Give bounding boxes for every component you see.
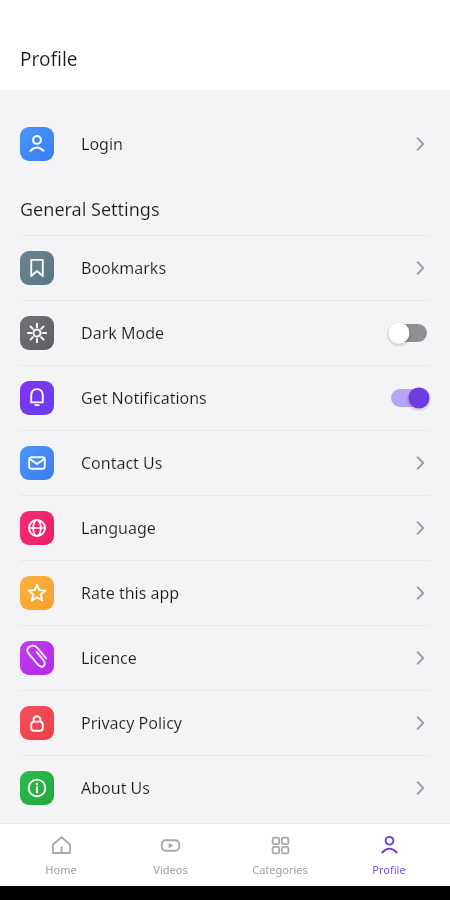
button[interactable]: Contact Us: [0, 431, 450, 495]
staticText: Get Notifications: [81, 387, 386, 409]
button[interactable]: Licence: [0, 626, 450, 690]
staticText: Language: [81, 517, 410, 539]
staticText: About Us: [81, 777, 410, 799]
button[interactable]: Privacy Policy: [0, 691, 450, 755]
button[interactable]: Get Notifications: [0, 366, 450, 430]
staticText: Privacy Policy: [81, 712, 410, 734]
staticText: Bookmarks: [81, 257, 410, 279]
staticText: Licence: [81, 647, 410, 669]
staticText: Categories: [252, 862, 308, 877]
button[interactable]: Rate this app: [0, 561, 450, 625]
button[interactable]: Switch on: [386, 385, 430, 411]
staticText: Profile: [372, 862, 406, 877]
button[interactable]: Login: [0, 112, 450, 176]
button[interactable]: Home: [13, 823, 109, 886]
button[interactable]: Categories: [232, 823, 328, 886]
button[interactable]: Switch off: [386, 320, 430, 346]
button[interactable]: Profile: [341, 823, 437, 886]
staticText: General Settings: [20, 197, 160, 222]
button[interactable]: About Us: [0, 756, 450, 820]
staticText: Home: [45, 862, 77, 877]
staticText: Login: [81, 133, 410, 155]
staticText: Videos: [153, 862, 188, 877]
staticText: Contact Us: [81, 452, 410, 474]
staticText: Dark Mode: [81, 322, 386, 344]
button[interactable]: Bookmarks: [0, 236, 450, 300]
staticText: Rate this app: [81, 582, 410, 604]
button[interactable]: Dark Mode: [0, 301, 450, 365]
button[interactable]: Videos: [122, 823, 218, 886]
button[interactable]: Language: [0, 496, 450, 560]
staticText: Profile: [20, 46, 78, 72]
